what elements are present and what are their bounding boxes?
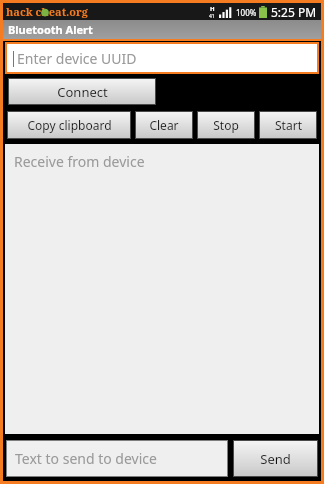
staticText: Bluetooth Alert [8,22,93,37]
button[interactable]: Connect [9,79,155,104]
staticText: Receive from device [14,152,145,171]
button[interactable]: Receive from device [5,144,319,434]
staticText: Copy clipboard [27,117,112,133]
staticText: Stop [213,117,239,133]
button[interactable]: Enter device UUID [7,44,317,72]
staticText: Start [275,117,302,133]
staticText: 100% [236,7,257,18]
staticText: hack cheat.org [6,4,88,19]
button[interactable]: Send [234,441,317,476]
staticText: Clear [149,117,179,133]
staticText: Enter device UUID [17,49,137,68]
button[interactable]: Copy clipboard [8,112,130,138]
staticText: Text to send to device [15,449,157,468]
staticText: 41 [209,13,215,20]
button[interactable]: Clear [136,112,192,138]
button[interactable]: Start [260,112,316,138]
staticText: 5:25 PM [271,4,317,20]
staticText: H [210,5,215,13]
button[interactable]: Text to send to device [7,441,227,476]
staticText: Connect [57,83,108,101]
staticText: Send [260,450,291,468]
button[interactable]: Stop [198,112,254,138]
